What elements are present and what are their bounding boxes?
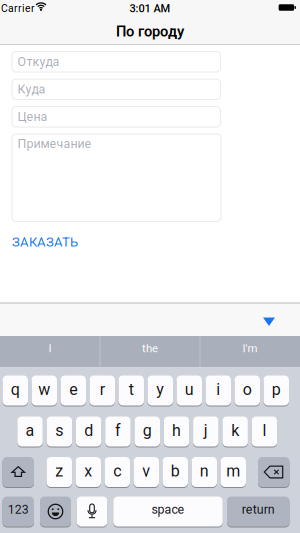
button[interactable]: u [176,374,202,406]
staticText: Откуда [17,54,59,69]
button[interactable]: y [147,374,173,406]
staticText: u [185,380,194,399]
button[interactable]: m [220,456,246,488]
staticText: l [262,421,266,440]
staticText: p [272,380,281,399]
button[interactable] [258,456,289,488]
button[interactable]: q [2,374,28,406]
button[interactable] [2,456,34,488]
staticText: Цена [17,109,47,124]
button[interactable] [263,317,275,326]
staticText: f [115,421,121,440]
staticText: j [204,421,208,440]
button[interactable]: b [162,456,188,488]
button[interactable]: the [101,333,199,364]
button[interactable]: Куда [12,79,220,99]
staticText: Carrier [1,2,35,15]
staticText: e [69,380,77,399]
button[interactable]: h [164,415,189,447]
staticText: Куда [17,82,45,96]
button[interactable]: e [60,374,86,406]
button[interactable]: n [191,456,217,488]
staticText: x [84,462,92,480]
staticText: 123 [8,502,29,517]
button[interactable]: 123 [2,495,34,527]
button[interactable]: Примечание [12,134,221,221]
staticText: ЗАКАЗАТЬ [12,234,78,250]
button[interactable]: f [105,415,131,447]
staticText: space [151,502,184,517]
staticText: o [243,380,252,399]
button[interactable] [77,495,107,527]
staticText: g [143,421,152,440]
button[interactable]: return [227,495,289,527]
button[interactable]: k [222,415,248,447]
staticText: z [55,462,63,480]
button[interactable]: a [17,415,43,447]
staticText: Примечание [17,136,91,151]
staticText: По городу [116,23,184,40]
staticText: i [216,380,220,399]
staticText: k [231,421,239,440]
staticText: c [113,462,121,480]
staticText: 3:01 AM [129,2,170,15]
button[interactable]: w [31,374,57,406]
button[interactable]: s [47,415,72,447]
staticText: I'm [242,342,257,355]
staticText: t [129,380,134,399]
button[interactable]: p [263,374,289,406]
staticText: a [26,421,35,440]
button[interactable]: I [1,333,99,364]
button[interactable]: Откуда [12,51,220,72]
button[interactable]: i [205,374,231,406]
staticText: b [171,462,180,480]
button[interactable]: c [104,456,130,488]
button[interactable]: l [252,415,277,447]
staticText: h [172,421,181,440]
staticText: the [142,342,158,355]
button[interactable]: r [89,374,115,406]
staticText: I [48,342,51,355]
staticText: n [200,462,209,480]
staticText: s [55,421,63,440]
button[interactable]: t [118,374,144,406]
button[interactable]: o [234,374,260,406]
staticText: q [11,380,20,399]
staticText: m [226,462,240,480]
staticText: y [156,380,164,399]
button[interactable]: Цена [12,106,220,127]
button[interactable]: z [46,456,72,488]
button[interactable]: I'm [201,333,299,364]
staticText: w [38,380,50,399]
button[interactable]: j [193,415,219,447]
button[interactable]: space [113,495,223,527]
button[interactable] [40,495,71,527]
button[interactable]: d [76,415,101,447]
staticText: r [100,380,105,399]
button[interactable]: g [134,415,160,447]
button[interactable]: v [133,456,159,488]
button[interactable]: x [75,456,101,488]
staticText: d [84,421,93,440]
staticText: return [242,502,275,517]
button[interactable]: ЗАКАЗАТЬ [12,234,78,250]
staticText: v [142,462,150,480]
